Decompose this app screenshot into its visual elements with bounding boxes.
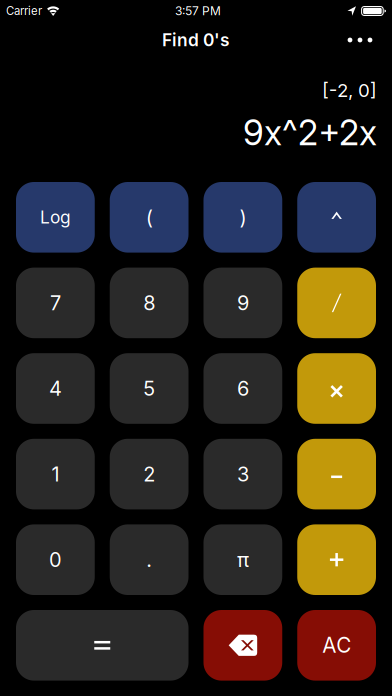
button[interactable]: Divide (297, 268, 376, 338)
staticText: [-2, 0] (322, 79, 377, 102)
button[interactable]: 4 (16, 353, 95, 424)
staticText: 8 (143, 291, 155, 315)
button[interactable]: ) (203, 182, 282, 253)
button[interactable]: Power (297, 182, 376, 253)
button[interactable]: 5 (110, 353, 189, 424)
button[interactable]: 6 (203, 353, 282, 424)
staticText: . (146, 548, 152, 572)
button[interactable]: 8 (110, 268, 189, 338)
staticText: 4 (49, 376, 62, 401)
staticText: ( (146, 205, 153, 229)
button[interactable]: AC (297, 610, 376, 681)
staticText: 9 (237, 291, 249, 315)
button[interactable]: Minus (297, 439, 376, 509)
button[interactable]: Multiply (297, 353, 376, 424)
button[interactable]: 7 (16, 268, 95, 338)
button[interactable]: Equals (16, 610, 188, 681)
button[interactable]: . (110, 524, 189, 595)
button[interactable]: 0 (16, 524, 95, 595)
staticText: 5 (143, 376, 155, 401)
button[interactable]: More options (336, 21, 384, 59)
button[interactable]: Log (16, 182, 95, 253)
staticText: Find 0's (162, 29, 230, 50)
staticText: 7 (50, 291, 61, 315)
staticText: 6 (237, 376, 249, 401)
staticText: 3:57 PM (175, 4, 221, 18)
staticText: AC (322, 633, 351, 658)
staticText: 1 (51, 462, 59, 486)
button[interactable]: Delete (203, 610, 282, 681)
staticText: 3 (237, 462, 249, 486)
button[interactable]: 3 (203, 439, 282, 509)
staticText: Carrier (6, 4, 42, 18)
staticText: Log (40, 207, 71, 228)
staticText: 9x^2+2x (243, 112, 377, 153)
button[interactable]: ( (110, 182, 189, 253)
staticText: ) (239, 205, 246, 229)
button[interactable]: Plus (297, 524, 376, 595)
button[interactable]: π (203, 524, 282, 595)
button[interactable]: 1 (16, 439, 95, 509)
staticText: 0 (49, 548, 62, 572)
staticText: 2 (143, 462, 155, 486)
button[interactable]: 9 (203, 268, 282, 338)
button[interactable]: 2 (110, 439, 189, 509)
staticText: π (237, 548, 249, 572)
